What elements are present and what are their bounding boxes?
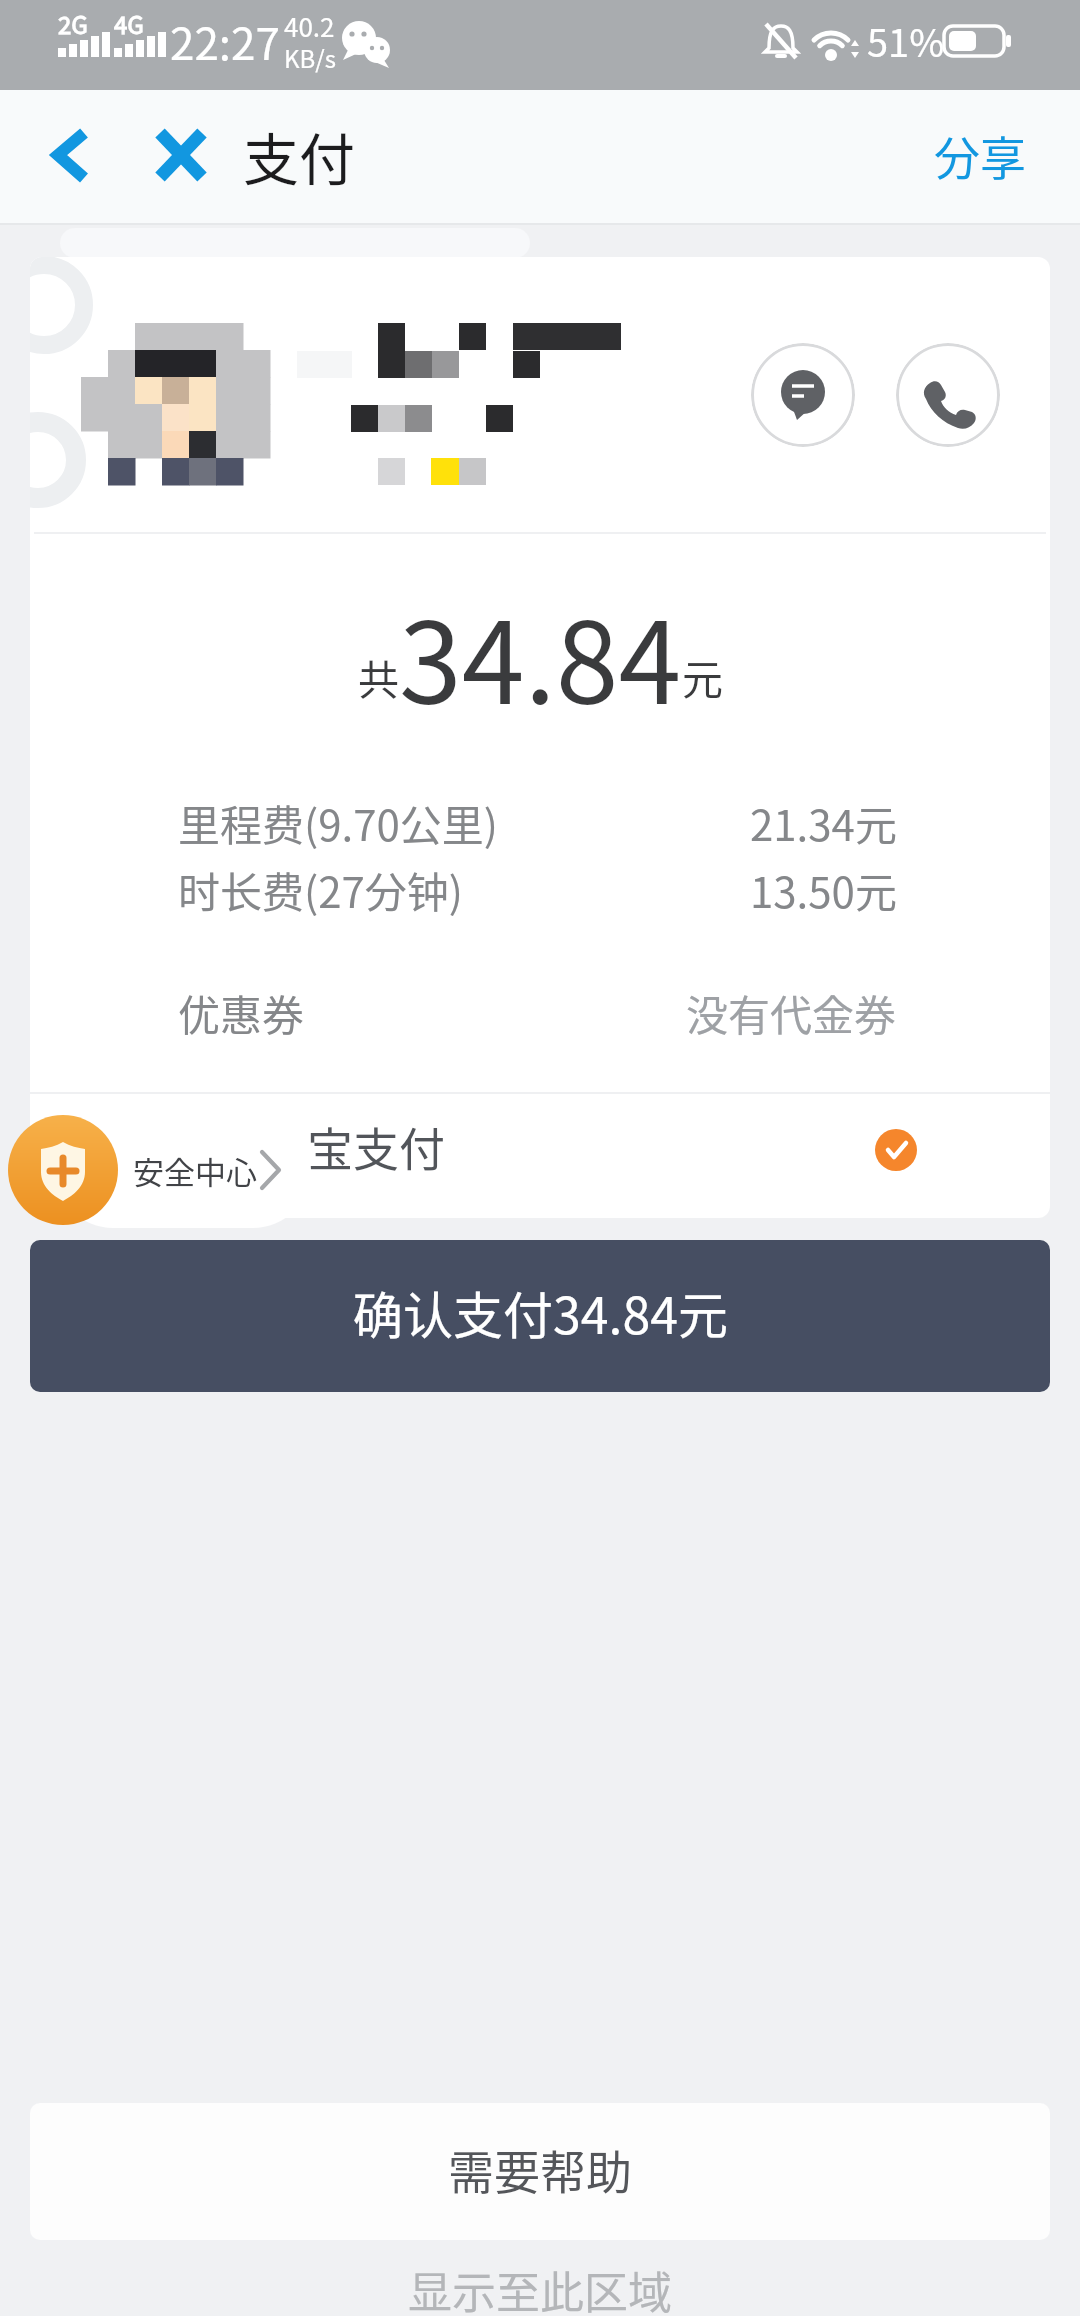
staticText: 支付 [243,115,355,196]
button[interactable] [8,1115,118,1225]
staticText: 没有代金券 [686,982,897,1043]
staticText: 优惠券 [178,982,305,1043]
staticText: 时长费(27分钟) [178,859,464,920]
button[interactable]: 确认支付34.84元 [30,1240,1050,1392]
staticText: 共 [358,647,399,706]
button[interactable] [30,1094,1050,1218]
button[interactable] [130,90,240,225]
button[interactable]: 需要帮助 [30,2103,1050,2240]
staticText: 安全中心 [133,1148,257,1193]
button[interactable]: 安全中心 [55,1112,311,1228]
staticText: 21.34元 [750,792,897,853]
button[interactable] [751,343,855,447]
staticText: 确认支付34.84元 [353,1276,728,1348]
staticText: 22:27 [170,9,280,73]
staticText: 宝支付 [307,1113,445,1180]
staticText: 4G [114,6,144,41]
button[interactable]: 分享 [900,90,1060,221]
button[interactable] [0,90,130,225]
staticText: 34.84 [399,573,682,737]
staticText: 13.50元 [750,859,897,920]
staticText: 40.2 [284,7,335,45]
staticText: 里程费(9.70公里) [178,792,498,853]
staticText: KB/s [284,40,336,75]
staticText: 元 [682,647,723,706]
staticText: 51% [867,13,945,68]
staticText: 2G [58,6,88,41]
staticText: 显示至此区域 [408,2258,672,2316]
button[interactable] [896,343,1000,447]
staticText: 需要帮助 [448,2136,632,2203]
staticText: 分享 [934,122,1026,189]
